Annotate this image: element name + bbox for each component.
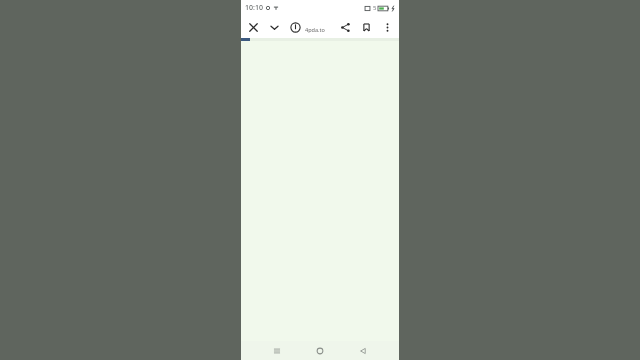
staticText: 5 — [373, 4, 377, 12]
button[interactable]: Share — [336, 18, 354, 36]
button[interactable]: More options — [378, 18, 396, 36]
button[interactable]: Bookmark — [357, 18, 375, 36]
staticText: 10:10 — [245, 3, 263, 13]
button[interactable]: Back — [353, 341, 373, 360]
button[interactable]: Page info — [286, 18, 304, 36]
staticText: 4pda.to — [305, 26, 325, 33]
button[interactable]: Expand — [265, 18, 283, 36]
button[interactable]: Recent apps — [267, 341, 287, 360]
button[interactable]: Close — [244, 18, 262, 36]
button[interactable]: Home — [310, 341, 330, 360]
